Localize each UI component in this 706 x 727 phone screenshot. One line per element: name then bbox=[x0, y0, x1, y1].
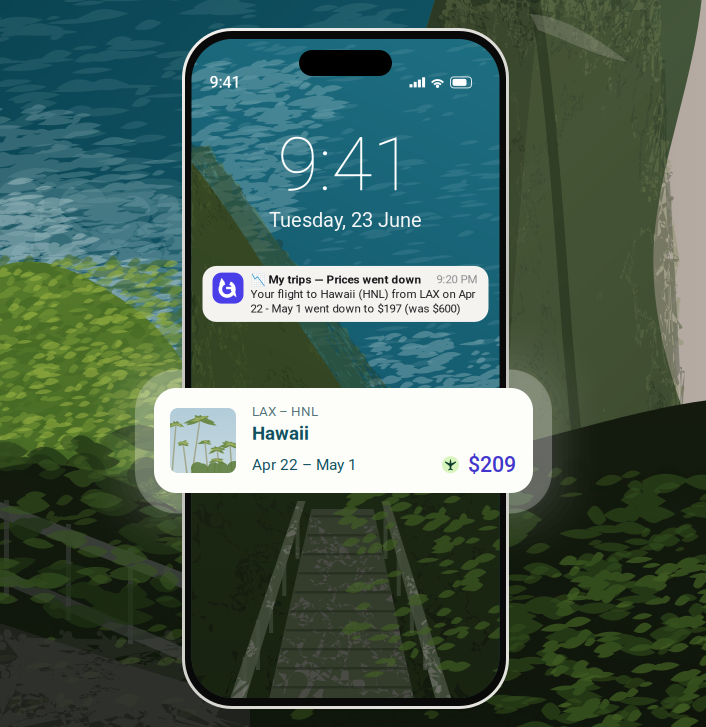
staticText: 📉 My trips — Prices went down bbox=[250, 273, 421, 286]
staticText: LAX – HNL bbox=[252, 404, 318, 419]
staticText: 22 - May 1 went down to $197 (was $600) bbox=[250, 302, 460, 315]
button[interactable]: LAX – HNL bbox=[154, 388, 533, 493]
staticText: 9:41 bbox=[209, 73, 240, 92]
staticText: $209 bbox=[468, 452, 516, 477]
staticText: 9:20 PM bbox=[436, 273, 477, 286]
staticText: Apr 22 – May 1 bbox=[252, 456, 357, 474]
staticText: Tuesday, 23 June bbox=[269, 208, 422, 232]
staticText: 9:41 bbox=[277, 121, 413, 208]
button[interactable]: 📉 My trips — Prices went down bbox=[202, 266, 488, 322]
staticText: Your flight to Hawaii (HNL) from LAX on … bbox=[250, 287, 475, 301]
staticText: Hawaii bbox=[252, 422, 309, 444]
